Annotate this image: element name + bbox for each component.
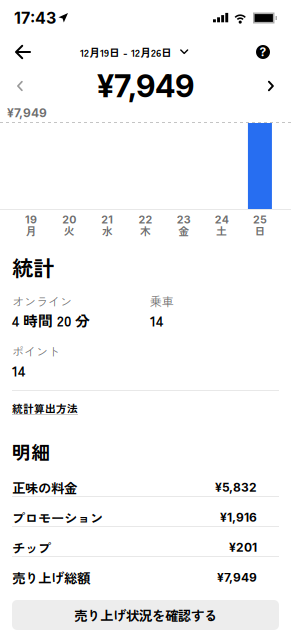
- staticText: 22: [138, 213, 152, 226]
- staticText: 明細: [12, 438, 50, 465]
- staticText: 4 時間 20 分: [12, 309, 90, 331]
- staticText: ¥7,949: [217, 570, 257, 585]
- staticText: 14: [150, 309, 163, 331]
- button[interactable]: Previous week: [6, 72, 34, 100]
- staticText: 統計: [12, 252, 54, 282]
- staticText: 金: [178, 223, 189, 238]
- staticText: ¥1,916: [220, 510, 257, 525]
- staticText: 売り上げ総額: [12, 568, 90, 587]
- staticText: 24: [215, 213, 229, 226]
- staticText: ¥7,949: [97, 67, 194, 104]
- staticText: ?: [259, 45, 266, 59]
- staticText: 25: [253, 213, 267, 226]
- staticText: 19: [25, 213, 37, 226]
- staticText: 売り上げ状況を確認する: [74, 605, 217, 625]
- staticText: 17:43: [14, 8, 56, 28]
- staticText: 20: [62, 213, 76, 226]
- staticText: ¥201: [229, 540, 257, 555]
- button[interactable]: 売り上げ状況を確認する: [12, 600, 279, 630]
- button[interactable]: Help: [248, 37, 278, 67]
- staticText: 乗車: [150, 292, 174, 310]
- staticText: ポイント: [12, 342, 60, 360]
- button[interactable]: 12月19日 - 12月26日: [74, 37, 195, 67]
- staticText: 土: [216, 223, 227, 238]
- staticText: 14: [12, 359, 25, 381]
- staticText: 正味の料金: [12, 478, 77, 497]
- button[interactable]: Back: [8, 37, 38, 67]
- staticText: 12月19日 - 12月26日: [80, 44, 172, 60]
- staticText: 水: [102, 223, 113, 238]
- staticText: 23: [177, 213, 191, 226]
- button[interactable]: Next week: [257, 72, 285, 100]
- staticText: オンライン: [12, 292, 72, 310]
- staticText: 統計算出方法: [12, 400, 78, 416]
- staticText: 火: [64, 223, 75, 238]
- button[interactable]: 統計算出方法: [12, 401, 78, 415]
- staticText: 21: [101, 213, 113, 226]
- staticText: ¥7,949: [7, 106, 47, 120]
- staticText: チップ: [12, 538, 51, 557]
- staticText: 木: [140, 223, 151, 238]
- staticText: 日: [254, 223, 265, 238]
- staticText: 月: [26, 223, 37, 238]
- staticText: ¥5,832: [215, 480, 257, 495]
- staticText: プロモーション: [12, 508, 103, 527]
